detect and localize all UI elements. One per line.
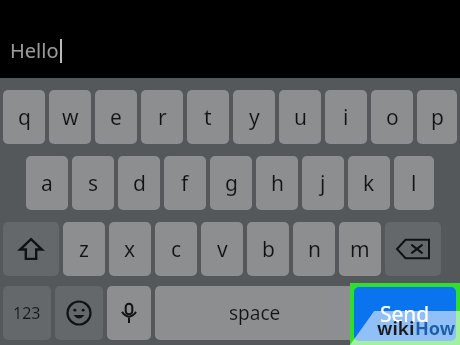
staticText: y — [249, 103, 260, 132]
button[interactable]: w — [49, 90, 91, 144]
staticText: p — [431, 103, 444, 132]
staticText: c — [171, 235, 182, 264]
button[interactable]: y — [233, 90, 275, 144]
button[interactable]: Backspace — [385, 222, 441, 276]
staticText: g — [225, 169, 238, 198]
button[interactable]: s — [72, 156, 114, 210]
button[interactable]: d — [118, 156, 160, 210]
button[interactable]: q — [3, 90, 45, 144]
staticText: 123 — [13, 302, 41, 324]
button[interactable]: Send — [354, 287, 456, 341]
button[interactable]: x — [109, 222, 151, 276]
button[interactable]: Shift — [3, 222, 59, 276]
staticText: u — [294, 103, 307, 132]
button[interactable]: f — [164, 156, 206, 210]
staticText: m — [350, 235, 370, 264]
button[interactable]: space — [155, 286, 355, 340]
staticText: j — [320, 169, 326, 198]
staticText: l — [411, 169, 417, 198]
button[interactable]: b — [247, 222, 289, 276]
button[interactable]: j — [302, 156, 344, 210]
staticText: a — [41, 169, 53, 198]
button[interactable]: a — [26, 156, 68, 210]
button[interactable]: m — [339, 222, 381, 276]
button[interactable]: e — [95, 90, 137, 144]
button[interactable]: Emoji — [55, 286, 103, 340]
staticText: k — [363, 169, 375, 198]
button[interactable]: z — [63, 222, 105, 276]
button[interactable]: 123 — [3, 286, 51, 340]
button[interactable]: g — [210, 156, 252, 210]
button[interactable]: r — [141, 90, 183, 144]
button[interactable]: v — [201, 222, 243, 276]
button[interactable]: i — [325, 90, 367, 144]
button[interactable]: o — [371, 90, 413, 144]
button[interactable]: Voice input — [107, 286, 151, 340]
button[interactable]: u — [279, 90, 321, 144]
staticText: t — [204, 103, 212, 132]
staticText: n — [308, 235, 321, 264]
staticText: f — [181, 169, 189, 198]
staticText: v — [217, 235, 228, 264]
staticText: d — [133, 169, 146, 198]
staticText: q — [18, 103, 31, 132]
staticText: r — [158, 103, 167, 132]
button[interactable]: k — [348, 156, 390, 210]
staticText: space — [229, 300, 281, 326]
staticText: e — [110, 103, 122, 132]
staticText: z — [79, 235, 89, 264]
button[interactable]: c — [155, 222, 197, 276]
button[interactable]: n — [293, 222, 335, 276]
staticText: s — [88, 169, 99, 198]
staticText: b — [262, 235, 275, 264]
button[interactable]: h — [256, 156, 298, 210]
button[interactable]: p — [417, 90, 457, 144]
staticText: o — [386, 103, 399, 132]
button[interactable]: l — [394, 156, 434, 210]
staticText: h — [271, 169, 284, 198]
button[interactable]: t — [187, 90, 229, 144]
staticText: wiki — [377, 316, 415, 341]
staticText: w — [62, 103, 79, 132]
staticText: Hello — [10, 37, 59, 64]
staticText: i — [343, 103, 349, 132]
staticText: How — [415, 316, 456, 341]
staticText: Send — [380, 300, 430, 329]
staticText: x — [124, 235, 136, 264]
